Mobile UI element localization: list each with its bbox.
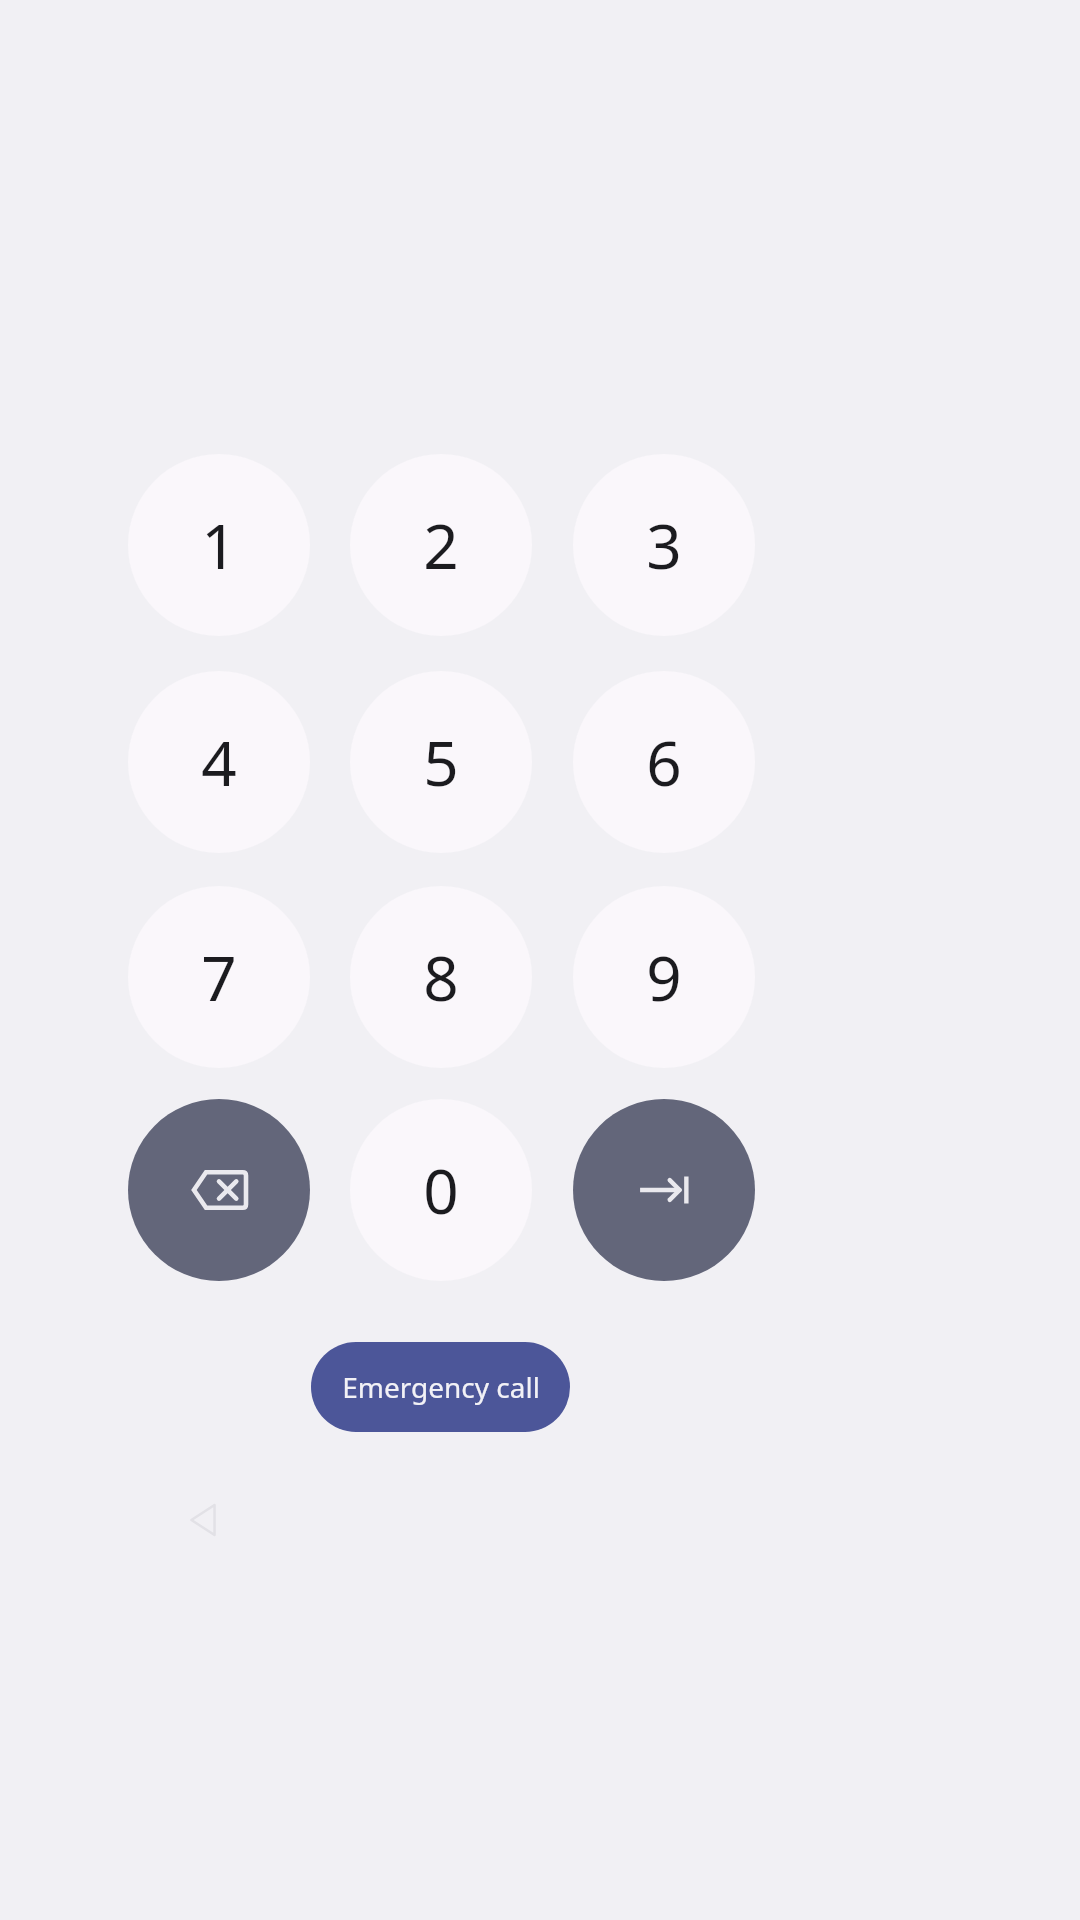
button[interactable]: 2 <box>350 454 532 636</box>
button[interactable]: 7 <box>128 886 310 1068</box>
button[interactable]: Emergency call <box>311 1342 570 1432</box>
button[interactable]: 9 <box>573 886 755 1068</box>
button[interactable]: Backspace <box>128 1099 310 1281</box>
staticText: 0 <box>423 1148 459 1232</box>
button[interactable]: Enter <box>573 1099 755 1281</box>
button[interactable]: 4 <box>128 671 310 853</box>
button[interactable]: 5 <box>350 671 532 853</box>
button[interactable]: 6 <box>573 671 755 853</box>
staticText: 2 <box>423 503 459 587</box>
staticText: 4 <box>201 720 237 804</box>
button[interactable]: 0 <box>350 1099 532 1281</box>
staticText: Emergency call <box>342 1368 540 1406</box>
staticText: 8 <box>423 935 459 1019</box>
staticText: 1 <box>201 503 237 587</box>
button[interactable]: 3 <box>573 454 755 636</box>
button[interactable]: 1 <box>128 454 310 636</box>
staticText: 5 <box>423 720 459 804</box>
staticText: 6 <box>646 720 682 804</box>
staticText: 3 <box>646 503 682 587</box>
staticText: 7 <box>201 935 237 1019</box>
button[interactable]: 8 <box>350 886 532 1068</box>
staticText: 9 <box>646 935 682 1019</box>
